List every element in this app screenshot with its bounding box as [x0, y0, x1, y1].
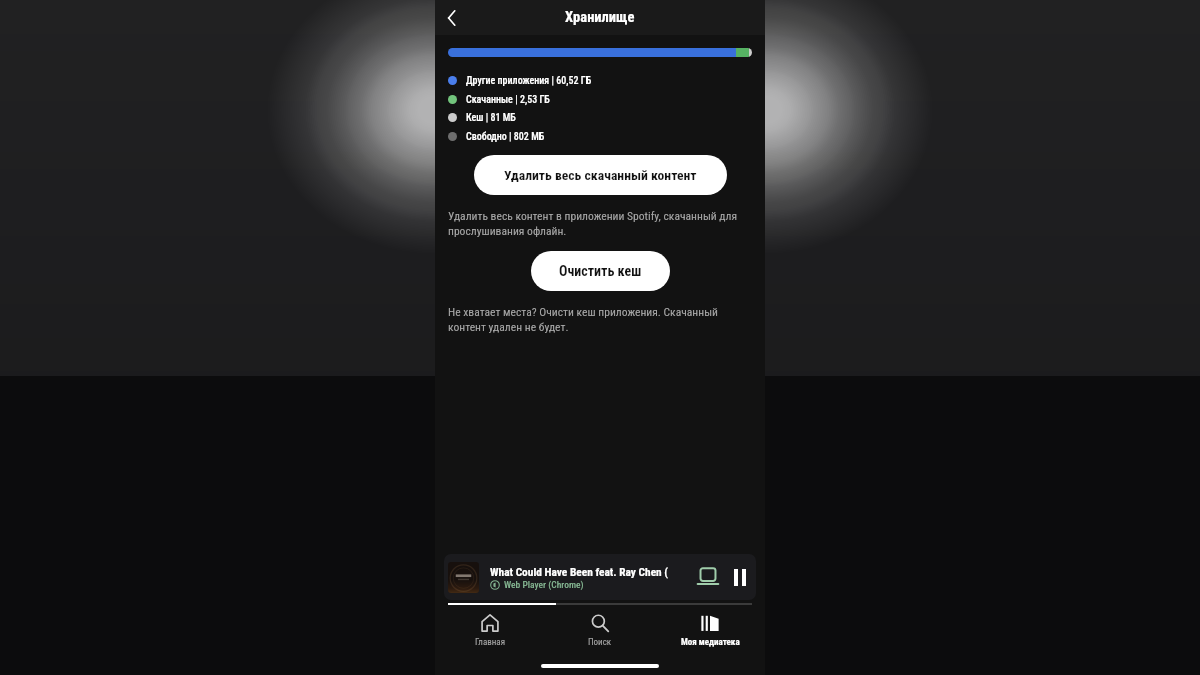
staticText: Поиск: [588, 637, 612, 648]
staticText: Свободно | 802 МБ: [466, 131, 545, 143]
staticText: Кеш | 81 МБ: [466, 112, 516, 124]
staticText: Моя медиатека: [681, 637, 740, 648]
staticText: Другие приложения | 60,52 ГБ: [466, 75, 592, 87]
staticText: Удалить весь контент в приложении Spotif…: [448, 209, 738, 237]
button[interactable]: Главная: [435, 614, 545, 654]
button[interactable]: What Could Have Been feat. Ray Chen (: [444, 554, 756, 600]
button[interactable]: Моя медиатека: [655, 614, 765, 654]
button[interactable]: Очистить кеш: [531, 251, 670, 291]
staticText: What Could Have Been feat. Ray Chen (: [490, 565, 669, 578]
staticText: Web Player (Chrome): [504, 579, 584, 590]
button[interactable]: Поиск: [545, 614, 655, 654]
button[interactable]: Подключиться к устройству: [695, 564, 721, 590]
staticText: Удалить весь скачанный контент: [504, 167, 697, 183]
staticText: Главная: [475, 637, 506, 648]
button[interactable]: Удалить весь скачанный контент: [474, 155, 727, 195]
staticText: Очистить кеш: [559, 263, 642, 279]
staticText: Хранилище: [565, 9, 635, 26]
staticText: Скачанные | 2,53 ГБ: [466, 94, 550, 106]
button[interactable]: Назад: [438, 4, 466, 32]
button[interactable]: Пауза: [727, 564, 753, 590]
staticText: Не хватает места? Очисти кеш приложения.…: [448, 305, 718, 333]
